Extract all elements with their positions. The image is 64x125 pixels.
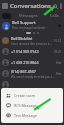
button[interactable]: Bell Support	[0, 20, 64, 31]
staticText: Vous recevez des services à distance	[11, 42, 53, 46]
button[interactable]: Account	[60, 3, 62, 9]
button[interactable]: Search	[51, 2, 59, 10]
staticText: +1 514 555 0143	[11, 49, 39, 54]
staticText: Bell Support	[12, 20, 36, 25]
staticText: (514) 867-4567	[11, 69, 36, 74]
staticText: +1 438 210 8844	[11, 60, 39, 65]
button[interactable]: App icon	[2, 3, 8, 9]
staticText: Text Message	[14, 113, 37, 118]
staticText: We aren't ready to send you that you wan…	[11, 75, 55, 79]
button[interactable]: Calls	[47, 12, 62, 19]
staticText: Hier	[56, 72, 62, 76]
staticText: 09:41	[54, 50, 62, 54]
button[interactable]: RCS Message	[1, 102, 63, 109]
staticText: Conversations	[10, 2, 51, 10]
staticText: Create room	[14, 93, 36, 98]
button[interactable]	[0, 79, 64, 90]
staticText: Hier	[56, 61, 62, 65]
button[interactable]: Messages	[16, 12, 41, 19]
staticText: Bell Mobilité	[11, 36, 33, 41]
staticText: Messages	[19, 13, 38, 18]
staticText: 10:12	[54, 39, 62, 43]
button[interactable]: Create room	[1, 92, 63, 99]
button[interactable]: +1 514 555 0143	[0, 46, 64, 57]
button[interactable]: (514) 867-4567	[0, 68, 64, 79]
button[interactable]: +1 438 210 8844	[0, 57, 64, 68]
staticText: RCS Message	[14, 103, 37, 108]
button[interactable]: Menu	[2, 13, 11, 19]
button[interactable]: Bell Mobilité	[0, 35, 64, 46]
staticText: Calls	[50, 13, 59, 18]
staticText: Your message has been received	[12, 26, 56, 31]
button[interactable]: More options	[57, 23, 62, 28]
button[interactable]: Text Message	[1, 112, 63, 119]
